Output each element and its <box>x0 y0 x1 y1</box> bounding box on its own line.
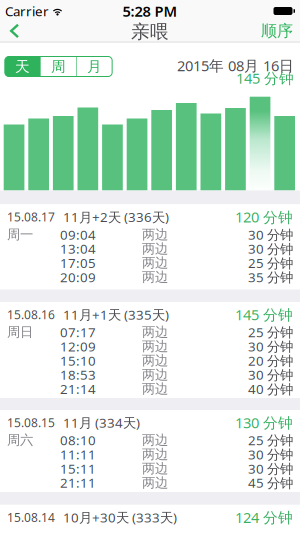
staticText: Carrier <box>5 2 49 20</box>
staticText: 145 分钟 <box>236 68 294 88</box>
button[interactable]: 顺序 <box>261 18 300 44</box>
staticText: 40 分钟 <box>248 380 293 398</box>
staticText: 两边 <box>142 269 168 285</box>
button[interactable] <box>0 368 300 382</box>
button[interactable] <box>151 110 172 190</box>
staticText: 两边 <box>142 381 168 397</box>
staticText: 13:04 <box>60 240 96 257</box>
staticText: 两边 <box>142 432 168 448</box>
button[interactable] <box>250 97 270 190</box>
staticText: 20 分钟 <box>248 352 293 369</box>
staticText: 25 分钟 <box>248 323 293 341</box>
staticText: 30 分钟 <box>248 366 293 383</box>
button[interactable]: 月 <box>77 56 112 76</box>
staticText: 17:05 <box>60 254 96 272</box>
button[interactable]: 周 <box>41 56 76 76</box>
staticText: 35 分钟 <box>248 268 293 286</box>
staticText: 两边 <box>142 338 168 354</box>
staticText: 145 分钟 <box>235 305 293 324</box>
staticText: 15.08.14 <box>7 509 55 525</box>
button[interactable]: 周一 <box>0 227 300 242</box>
staticText: 25 分钟 <box>248 431 293 449</box>
staticText: 18:53 <box>60 366 96 383</box>
staticText: 天 <box>15 57 30 75</box>
button[interactable] <box>0 20 20 42</box>
staticText: 两边 <box>142 240 168 257</box>
staticText: 月 <box>87 57 102 75</box>
staticText: 30 分钟 <box>248 460 293 477</box>
staticText: 两边 <box>142 226 168 243</box>
button[interactable] <box>0 476 300 490</box>
staticText: 15:11 <box>60 460 96 477</box>
staticText: 120 分钟 <box>235 207 293 227</box>
button[interactable] <box>225 108 246 190</box>
button[interactable] <box>0 461 300 476</box>
staticText: 30 分钟 <box>248 240 293 257</box>
staticText: 15.08.17 <box>7 209 55 225</box>
staticText: 5:28 PM <box>122 1 177 21</box>
button[interactable] <box>127 118 147 190</box>
button[interactable] <box>28 118 49 190</box>
button[interactable] <box>176 103 197 190</box>
staticText: 45 分钟 <box>248 474 293 491</box>
staticText: 11月 (334天) <box>63 414 140 431</box>
staticText: 30 分钟 <box>248 337 293 355</box>
staticText: 周一 <box>7 226 33 243</box>
button[interactable] <box>200 113 221 190</box>
staticText: 130 分钟 <box>235 413 293 432</box>
button[interactable] <box>0 382 300 396</box>
button[interactable] <box>0 242 300 256</box>
staticText: 124 分钟 <box>235 508 293 527</box>
button[interactable] <box>0 270 300 284</box>
staticText: 周日 <box>7 324 33 340</box>
button[interactable] <box>0 353 300 368</box>
staticText: 两边 <box>142 474 168 491</box>
staticText: 两边 <box>142 366 168 383</box>
button[interactable]: 周日 <box>0 325 300 339</box>
button[interactable]: 天 <box>5 56 40 76</box>
staticText: 周 <box>51 57 66 75</box>
button[interactable]: 周六 <box>0 433 300 447</box>
staticText: 12:09 <box>60 337 96 355</box>
staticText: 21:11 <box>60 474 96 491</box>
staticText: 20:09 <box>60 268 96 286</box>
staticText: 15.08.15 <box>7 414 55 430</box>
staticText: 两边 <box>142 352 168 369</box>
staticText: 15:10 <box>60 352 96 369</box>
staticText: 10月+30天 (333天) <box>63 508 177 526</box>
button[interactable] <box>0 447 300 461</box>
button[interactable] <box>274 116 295 190</box>
staticText: 11月+1天 (335天) <box>63 306 169 323</box>
button[interactable] <box>53 116 74 190</box>
staticText: 2015年 08月 16日 <box>177 56 294 75</box>
staticText: 11月+2天 (336天) <box>63 208 169 226</box>
staticText: 30 分钟 <box>248 445 293 463</box>
button[interactable] <box>102 124 123 190</box>
staticText: 周六 <box>7 432 33 448</box>
staticText: 15.08.16 <box>7 306 55 322</box>
staticText: 两边 <box>142 446 168 462</box>
staticText: 21:14 <box>60 380 96 398</box>
button[interactable] <box>0 256 300 270</box>
staticText: 07:17 <box>60 323 96 341</box>
button[interactable] <box>0 339 300 353</box>
staticText: 顺序 <box>261 21 293 41</box>
staticText: 11:11 <box>60 445 96 463</box>
staticText: 08:10 <box>60 431 96 449</box>
staticText: 两边 <box>142 460 168 477</box>
staticText: 30 分钟 <box>248 226 293 243</box>
staticText: 09:04 <box>60 226 96 243</box>
staticText: 两边 <box>142 255 168 271</box>
button[interactable] <box>4 124 24 190</box>
staticText: 两边 <box>142 324 168 340</box>
staticText: 亲喂 <box>131 20 169 43</box>
staticText: 25 分钟 <box>248 254 293 272</box>
